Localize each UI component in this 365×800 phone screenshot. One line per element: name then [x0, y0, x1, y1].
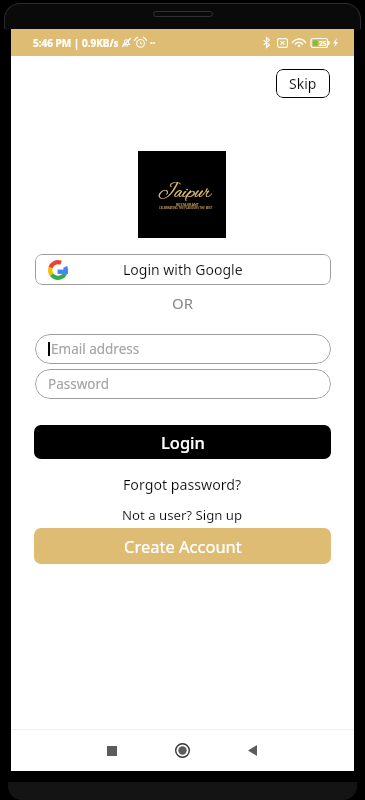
button[interactable]: Login [34, 425, 331, 459]
staticText: OR [172, 293, 194, 313]
button[interactable]: Login with Google [35, 254, 331, 285]
staticText: Email address [51, 340, 140, 358]
staticText: 5:46 PM | 0.9KB/s [33, 36, 119, 50]
staticText: 25 [319, 39, 327, 48]
staticText: Forgot password? [123, 475, 242, 494]
staticText: Login [161, 431, 205, 453]
staticText: CELEBRATING THE FLAVOURS THE BEST [159, 206, 213, 210]
button[interactable]: Recent apps [82, 730, 141, 771]
staticText: RESTAURANT [176, 202, 199, 207]
button[interactable]: Skip [276, 69, 330, 98]
staticText: ·· [150, 36, 156, 50]
button[interactable]: Forgot password? [117, 472, 248, 497]
button[interactable]: Create Account [34, 528, 331, 564]
button[interactable]: Home [153, 730, 212, 771]
button[interactable]: Back [223, 730, 282, 771]
staticText: Not a user? Sign up [122, 506, 243, 524]
button[interactable]: Password [35, 369, 331, 399]
button[interactable]: Not a user? Sign up [116, 503, 249, 527]
staticText: Password [48, 375, 110, 393]
staticText: Login with Google [123, 260, 243, 279]
staticText: Create Account [124, 535, 242, 557]
staticText: Skip [289, 74, 317, 93]
staticText: Jaipur [158, 180, 212, 205]
button[interactable]: Email address [35, 334, 331, 364]
